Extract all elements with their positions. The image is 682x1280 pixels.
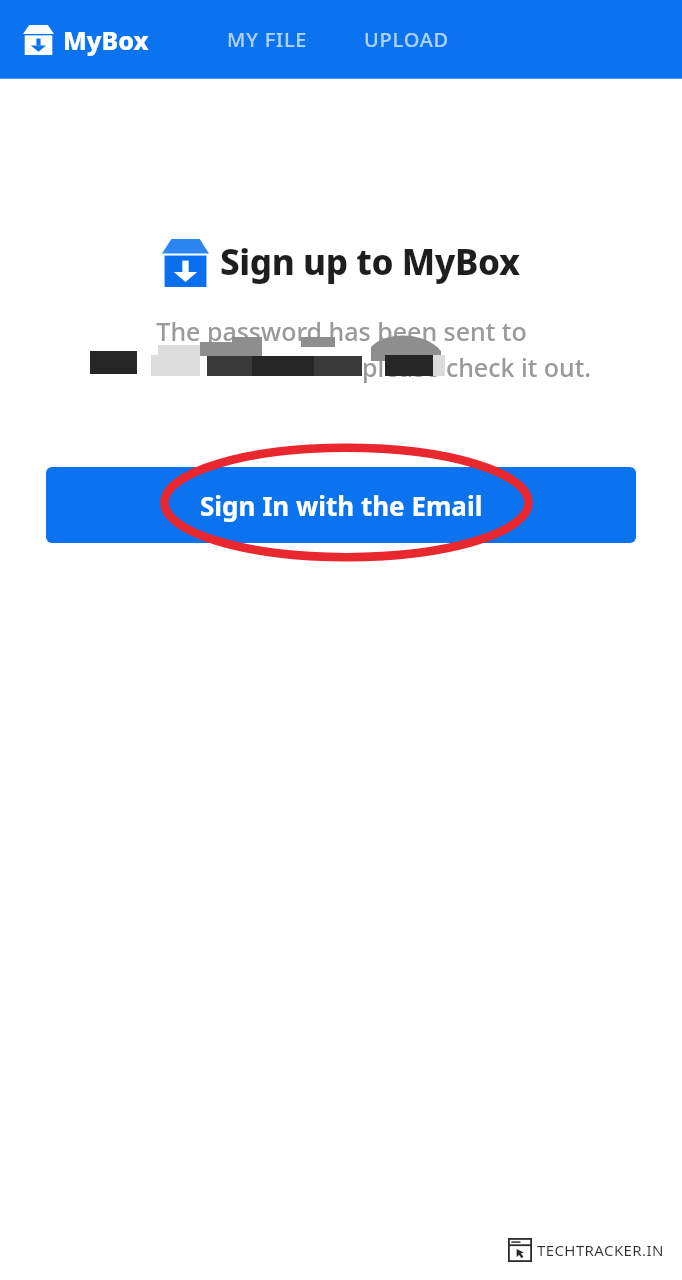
button[interactable]: UPLOAD (358, 16, 456, 63)
staticText: Sign up to MyBox (220, 238, 520, 286)
staticText: MY FILE (227, 26, 308, 53)
staticText: The password has been sent to (156, 314, 527, 348)
staticText: please check it out. (362, 350, 592, 384)
staticText: TECHTRACKER.IN (537, 1240, 664, 1260)
staticText: Sign In with the Email (200, 488, 483, 523)
button[interactable]: MY FILE (221, 16, 314, 63)
button[interactable]: MyBox (23, 23, 149, 57)
staticText: MyBox (63, 23, 149, 57)
staticText: UPLOAD (364, 26, 450, 53)
button[interactable]: Sign In with the Email (46, 467, 636, 543)
